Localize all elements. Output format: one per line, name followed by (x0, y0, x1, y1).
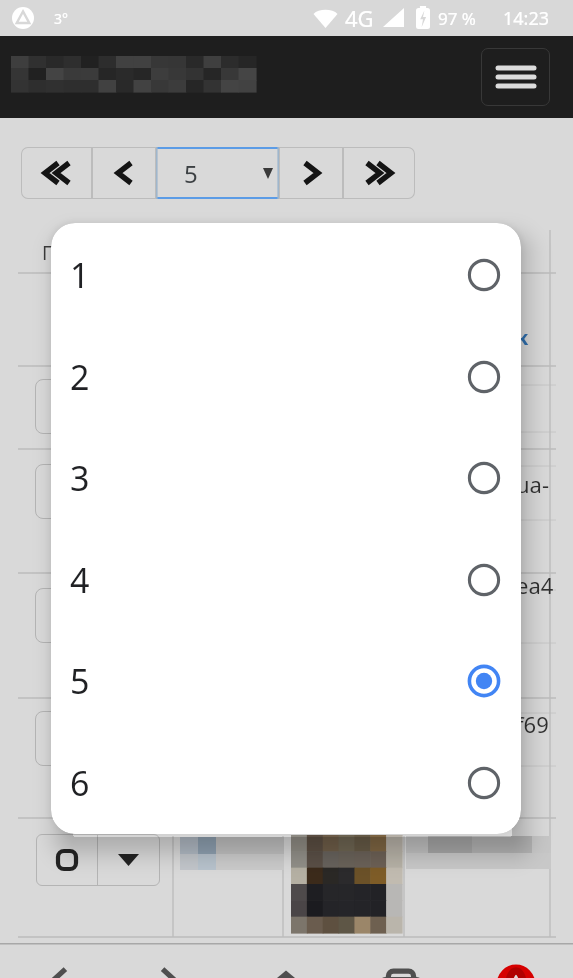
button[interactable]: 5 (51, 630, 521, 731)
staticText: 4G (345, 3, 374, 33)
button[interactable]: 4 (51, 529, 521, 630)
staticText: 3 (70, 455, 90, 501)
button[interactable]: 5 (156, 147, 279, 199)
staticText: ua- (516, 469, 550, 499)
staticText: 97 % (438, 7, 476, 30)
staticText: 1 (70, 252, 90, 298)
staticText: 14:23 (503, 6, 550, 31)
staticText: 5 (70, 658, 90, 704)
staticText: f69 (516, 709, 549, 739)
button[interactable]: 6 (51, 732, 521, 833)
button[interactable]: Home (228, 943, 343, 978)
staticText: ea4 (516, 570, 554, 600)
button[interactable]: Menu (481, 48, 550, 106)
button[interactable]: Back (0, 943, 114, 978)
button[interactable]: Tabs (343, 943, 458, 978)
staticText: 4 (70, 557, 90, 603)
staticText: 5 (184, 157, 198, 190)
button[interactable]: Last (343, 147, 415, 199)
staticText: к (516, 324, 529, 351)
button[interactable]: Forward (114, 943, 228, 978)
staticText: 2 (70, 354, 90, 400)
button[interactable]: 3 (51, 427, 521, 528)
staticText: 3° (54, 9, 68, 28)
button[interactable]: Opera (458, 943, 573, 978)
button[interactable]: First (21, 147, 92, 199)
button[interactable]: 2 (51, 326, 521, 427)
button[interactable]: Previous (92, 147, 156, 199)
staticText: П (42, 240, 56, 266)
staticText: 6 (70, 760, 90, 806)
button[interactable]: Next (279, 147, 343, 199)
button[interactable]: 1 (51, 224, 521, 325)
